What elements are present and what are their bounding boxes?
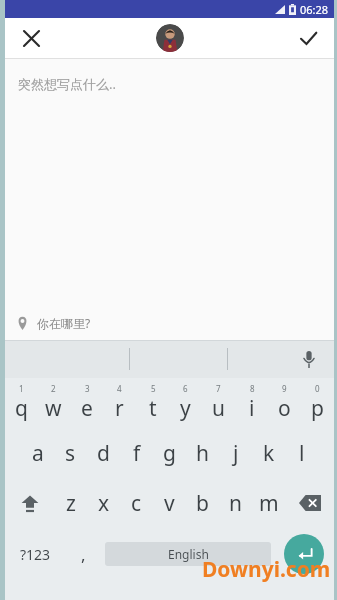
staticText: 7 <box>216 383 221 394</box>
button[interactable]: k <box>252 428 285 478</box>
button[interactable]: Close <box>13 20 49 56</box>
button[interactable]: , <box>65 528 102 580</box>
staticText: ?123 <box>20 545 51 564</box>
button[interactable]: Shift <box>5 478 54 528</box>
button[interactable]: Profile <box>156 24 184 52</box>
staticText: q <box>15 394 28 423</box>
staticText: 3 <box>85 383 90 394</box>
staticText: t <box>149 394 157 423</box>
staticText: y <box>180 394 191 423</box>
staticText: 6 <box>183 383 188 394</box>
button[interactable]: 6 <box>169 378 202 428</box>
button[interactable]: x <box>87 478 120 528</box>
button[interactable]: f <box>120 428 153 478</box>
button[interactable]: 2 <box>37 378 70 428</box>
staticText: o <box>278 394 291 423</box>
staticText: Downyi.com <box>202 555 331 584</box>
staticText: k <box>263 439 275 468</box>
button[interactable]: 你在哪里? <box>5 306 334 340</box>
staticText: English <box>168 546 209 562</box>
button[interactable]: d <box>87 428 120 478</box>
button[interactable]: 4 <box>103 378 136 428</box>
staticText: l <box>299 439 305 468</box>
staticText: a <box>32 439 44 468</box>
staticText: 06:28 <box>300 2 329 17</box>
button[interactable]: a <box>21 428 54 478</box>
staticText: c <box>131 489 142 518</box>
button[interactable]: b <box>186 478 219 528</box>
button[interactable]: 8 <box>235 378 268 428</box>
staticText: v <box>164 489 175 518</box>
staticText: g <box>163 439 176 468</box>
staticText: x <box>98 489 110 518</box>
staticText: 8 <box>250 383 255 394</box>
button[interactable]: m <box>252 478 285 528</box>
staticText: i <box>249 394 255 423</box>
button[interactable]: v <box>153 478 186 528</box>
button[interactable]: h <box>186 428 219 478</box>
staticText: u <box>212 394 225 423</box>
staticText: 0 <box>315 383 320 394</box>
staticText: , <box>81 543 86 566</box>
button[interactable]: Enter <box>284 534 324 574</box>
staticText: e <box>81 394 93 423</box>
staticText: n <box>229 489 242 518</box>
staticText: s <box>65 439 76 468</box>
staticText: d <box>97 439 110 468</box>
staticText: f <box>133 439 141 468</box>
button[interactable]: 7 <box>202 378 235 428</box>
button[interactable]: 9 <box>268 378 301 428</box>
button[interactable]: g <box>153 428 186 478</box>
staticText: 4 <box>117 383 122 394</box>
staticText: b <box>196 489 209 518</box>
staticText: 9 <box>282 383 287 394</box>
button[interactable]: z <box>54 478 87 528</box>
staticText: 2 <box>51 383 56 394</box>
button[interactable]: j <box>219 428 252 478</box>
staticText: h <box>196 439 209 468</box>
button[interactable]: n <box>219 478 252 528</box>
staticText: j <box>233 439 239 468</box>
button[interactable]: Post <box>290 20 326 56</box>
button[interactable]: Voice input <box>294 344 324 374</box>
staticText: p <box>311 394 324 423</box>
button[interactable]: s <box>54 428 87 478</box>
staticText: 1 <box>19 383 24 394</box>
button[interactable]: 3 <box>70 378 103 428</box>
staticText: r <box>115 394 124 423</box>
staticText: z <box>66 489 76 518</box>
staticText: 5 <box>151 383 156 394</box>
button[interactable]: 0 <box>301 378 334 428</box>
staticText: m <box>259 489 279 518</box>
staticText: w <box>45 394 62 423</box>
button[interactable]: ?123 <box>5 528 65 580</box>
button[interactable]: c <box>120 478 153 528</box>
button[interactable]: 5 <box>136 378 169 428</box>
button[interactable]: l <box>285 428 318 478</box>
button[interactable]: English <box>105 542 271 566</box>
staticText: 突然想写点什么.. <box>18 75 116 93</box>
button[interactable]: 1 <box>5 378 37 428</box>
staticText: 你在哪里? <box>37 315 91 331</box>
button[interactable]: Backspace <box>285 478 334 528</box>
